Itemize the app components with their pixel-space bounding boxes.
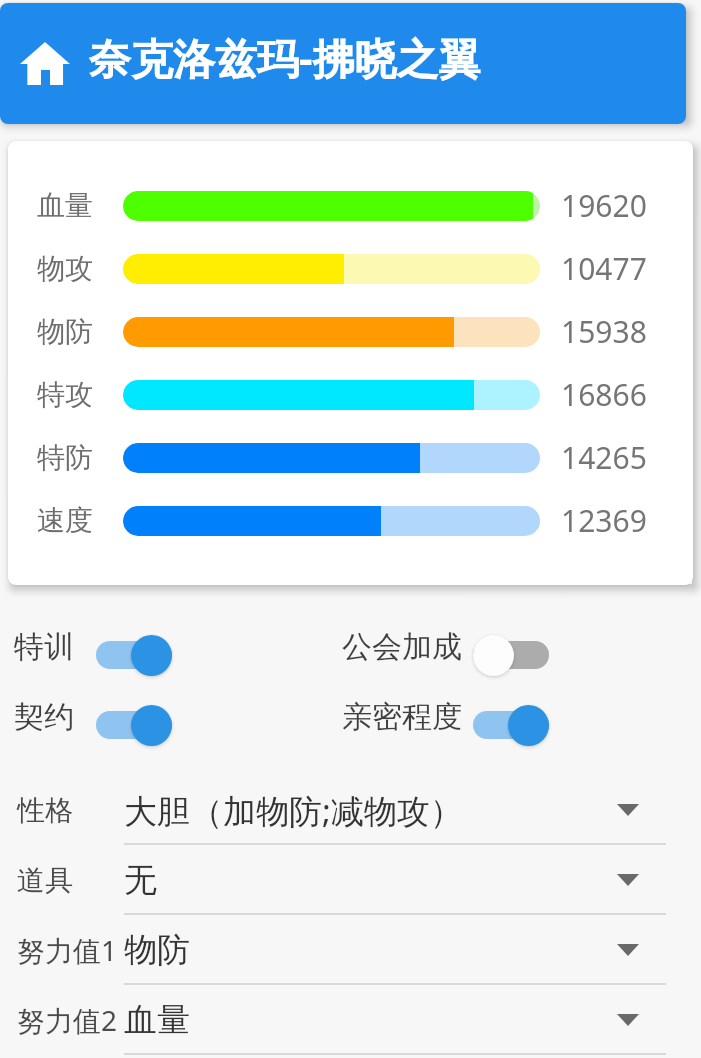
staticText: 道具 [17,863,73,898]
staticText: 无 [124,859,157,901]
staticText: 特训 [14,628,74,666]
staticText: 公会加成 [342,628,462,666]
button[interactable]: 奈克洛兹玛-拂晓之翼 [0,3,686,124]
staticText: 物防 [37,314,93,349]
staticText: 大胆（加物防;减物攻） [124,788,463,833]
button[interactable]: 努力值1 [0,915,701,985]
button[interactable]: 努力值2 [0,985,701,1055]
staticText: 血量 [124,999,190,1041]
staticText: 14265 [561,437,647,478]
staticText: 速度 [37,503,93,538]
staticText: 血量 [37,188,93,223]
staticText: 10477 [561,248,647,289]
staticText: 努力值2 [17,1001,118,1039]
button[interactable] [20,42,70,85]
staticText: 12369 [561,500,647,541]
staticText: 15938 [561,311,647,352]
staticText: 亲密程度 [342,698,462,736]
button[interactable]: 性格 [0,775,701,845]
staticText: 奈克洛兹玛-拂晓之翼 [89,29,481,86]
staticText: 性格 [17,793,73,828]
staticText: 19620 [561,185,647,226]
staticText: 特攻 [37,377,93,412]
staticText: 物防 [124,929,190,971]
button[interactable]: 道具 [0,845,701,915]
button[interactable] [96,634,172,676]
staticText: 物攻 [37,251,93,286]
staticText: 特防 [37,440,93,475]
staticText: 努力值1 [17,931,118,969]
button[interactable] [473,634,549,676]
staticText: 契约 [14,698,74,736]
staticText: 16866 [561,374,647,415]
button[interactable] [96,704,172,746]
button[interactable] [473,704,549,746]
